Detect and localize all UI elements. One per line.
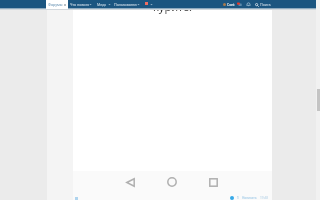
staticText: курите. <box>153 0 192 14</box>
staticText: 19:48 <box>260 196 269 200</box>
staticText: Медиа <box>97 2 106 7</box>
staticText: Пользователи <box>114 2 137 7</box>
button[interactable]: Что нового? <box>70 0 89 8</box>
button[interactable]: Conversations <box>236 1 243 8</box>
button[interactable]: Cont <box>223 1 235 8</box>
staticText: 1 <box>237 196 239 200</box>
button[interactable]: Поиск <box>255 1 271 8</box>
button[interactable]: Медиа <box>97 0 106 8</box>
staticText: Cont <box>227 2 235 7</box>
button[interactable]: Back <box>119 171 141 193</box>
button[interactable]: Home <box>161 171 183 193</box>
staticText: Написать <box>242 196 257 200</box>
staticText: Форумы <box>48 2 63 7</box>
button[interactable]: Recent apps <box>202 171 224 193</box>
staticText: Что нового? <box>70 2 89 7</box>
button[interactable]: Пользователи <box>114 0 137 8</box>
button[interactable]: Форумы <box>46 0 68 9</box>
button[interactable]: Alerts <box>245 1 252 8</box>
staticText: Поиск <box>260 2 271 7</box>
